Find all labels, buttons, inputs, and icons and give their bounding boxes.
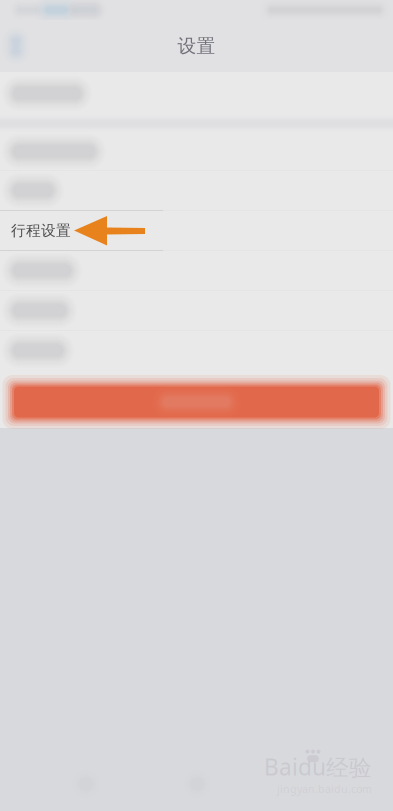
- button[interactable]: [0, 251, 393, 290]
- button[interactable]: [0, 370, 393, 428]
- staticText: 设置: [177, 34, 215, 57]
- button[interactable]: [0, 171, 393, 210]
- staticText: 行程设置: [11, 221, 71, 239]
- button[interactable]: [0, 72, 393, 115]
- button[interactable]: [0, 291, 393, 330]
- button[interactable]: 行程设置: [0, 211, 393, 250]
- button[interactable]: [0, 331, 393, 370]
- button[interactable]: Back: [0, 20, 47, 72]
- staticText: Baidu经验: [264, 752, 372, 782]
- button[interactable]: [0, 133, 393, 170]
